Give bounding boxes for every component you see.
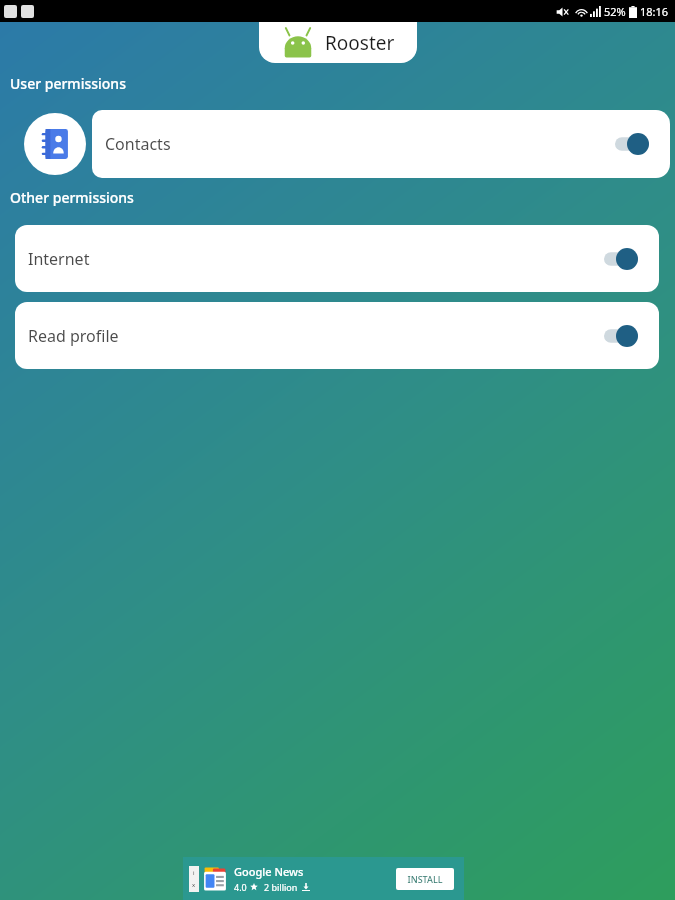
button[interactable]: Rooster — [259, 22, 417, 63]
button[interactable]: Internet — [15, 225, 659, 292]
button[interactable]: Toggle permission — [604, 248, 638, 270]
staticText: User permissions — [10, 74, 126, 93]
staticText: x — [192, 881, 196, 889]
button[interactable]: Contacts — [92, 110, 670, 178]
button[interactable]: INSTALL — [396, 868, 454, 890]
staticText: 18:16 — [640, 4, 669, 19]
staticText: Rooster — [325, 30, 395, 56]
staticText: Google News — [234, 864, 304, 879]
staticText: 2 billion — [264, 881, 298, 893]
button[interactable]: Toggle permission — [615, 133, 649, 155]
staticText: i — [193, 869, 195, 877]
staticText: 52% — [604, 4, 626, 19]
button[interactable]: i — [183, 857, 464, 900]
staticText: Other permissions — [10, 188, 134, 207]
staticText: Read profile — [28, 325, 119, 347]
button[interactable]: Read profile — [15, 302, 659, 369]
other: Contacts permission icon — [24, 113, 86, 175]
staticText: Contacts — [105, 133, 171, 155]
button[interactable]: Toggle permission — [604, 325, 638, 347]
staticText: 4.0 — [234, 881, 247, 893]
staticText: INSTALL — [407, 873, 443, 885]
staticText: Internet — [28, 248, 90, 270]
